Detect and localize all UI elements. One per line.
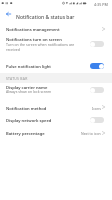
button[interactable]: [0, 36, 112, 58]
button[interactable]: Switch off: [90, 41, 104, 47]
button[interactable]: [0, 83, 112, 102]
button[interactable]: Switch on: [90, 63, 104, 69]
staticText: Icons: [92, 106, 101, 111]
staticText: Next to icon: [81, 131, 101, 136]
staticText: Always show on lock screen: [6, 89, 52, 94]
staticText: Notification & status bar: [16, 14, 75, 21]
button[interactable]: [0, 114, 112, 129]
button[interactable]: [0, 129, 112, 141]
staticText: 4:35 PM: [94, 2, 108, 7]
staticText: Notifications management: [6, 27, 60, 33]
staticText: Notifications turn on screen: [6, 37, 62, 43]
button[interactable]: [0, 102, 112, 114]
staticText: Display carrier name: [6, 85, 48, 91]
staticText: Battery percentage: [6, 131, 45, 137]
button[interactable]: Switch off: [90, 87, 104, 93]
button[interactable]: Back: [0, 9, 112, 22]
button[interactable]: [0, 22, 112, 36]
staticText: Turn on the screen when notifications ar…: [6, 42, 75, 47]
staticText: STATUS BAR: [6, 76, 28, 81]
staticText: Pulse notification light: [6, 64, 52, 70]
staticText: Notification method: [6, 106, 47, 112]
button[interactable]: Switch off: [90, 117, 104, 123]
staticText: received: [6, 47, 20, 52]
button[interactable]: [0, 57, 112, 73]
staticText: Display network speed: [6, 118, 52, 124]
